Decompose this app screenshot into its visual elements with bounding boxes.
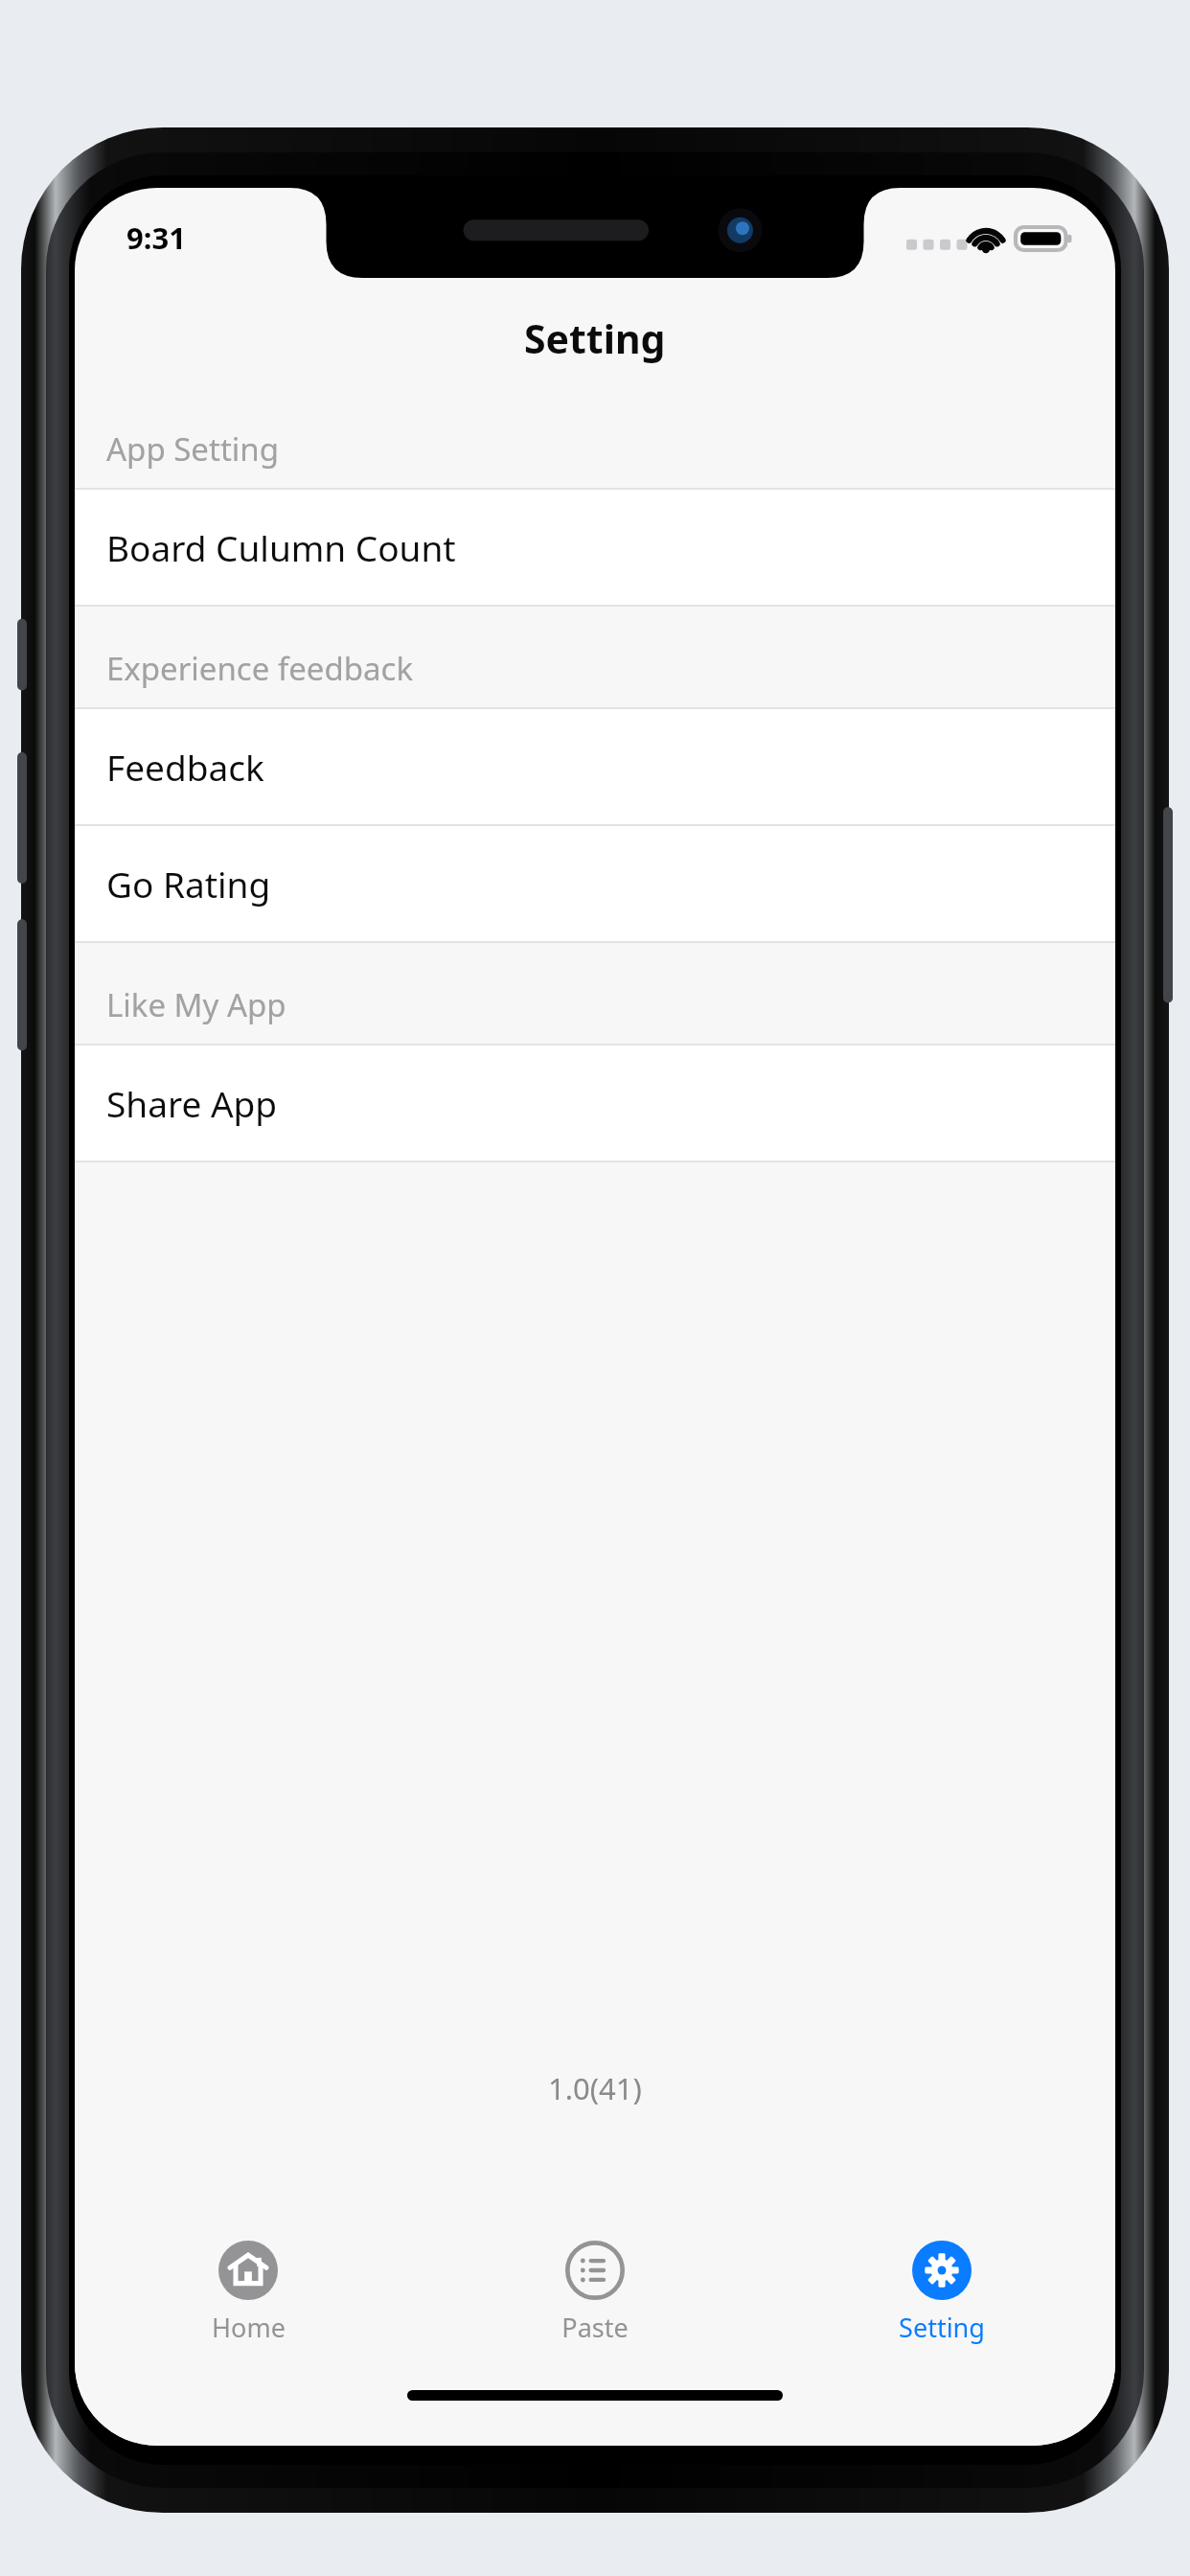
button[interactable]: Home xyxy=(75,2225,422,2379)
button[interactable]: Feedback xyxy=(75,709,1115,824)
staticText: Feedback xyxy=(106,743,264,791)
button[interactable]: Board Culumn Count xyxy=(75,490,1115,605)
staticText: Home xyxy=(212,2310,286,2345)
staticText: 1.0(41) xyxy=(548,2068,642,2108)
staticText: Paste xyxy=(561,2310,629,2345)
staticText: Share App xyxy=(106,1079,278,1127)
staticText: Board Culumn Count xyxy=(106,523,456,571)
staticText: Like My App xyxy=(106,983,286,1026)
staticText: App Setting xyxy=(106,427,280,471)
staticText: Go Rating xyxy=(106,860,271,908)
button[interactable]: Setting xyxy=(768,2225,1115,2379)
staticText: Setting xyxy=(524,311,666,365)
staticText: Setting xyxy=(899,2310,985,2345)
button[interactable]: Share App xyxy=(75,1046,1115,1161)
button[interactable]: Go Rating xyxy=(75,826,1115,941)
staticText: 9:31 xyxy=(126,218,186,258)
staticText: Experience feedback xyxy=(106,647,414,690)
button[interactable]: Paste xyxy=(422,2225,768,2379)
